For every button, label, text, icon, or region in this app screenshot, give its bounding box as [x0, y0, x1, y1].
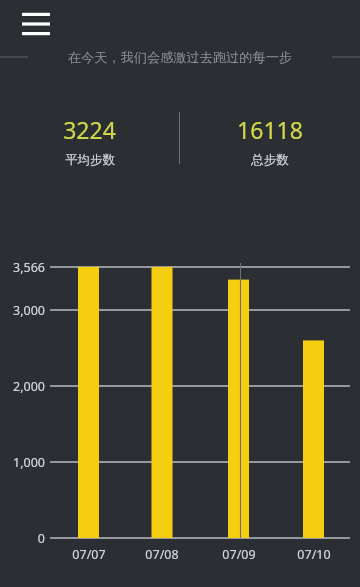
staticText: 07/07 — [72, 546, 106, 563]
staticText: 总步数 — [251, 152, 289, 168]
button[interactable]: Open navigation menu — [10, 4, 62, 44]
staticText: 07/10 — [297, 546, 331, 563]
button[interactable]: 3224 — [0, 112, 179, 168]
staticText: 3,000 — [13, 302, 45, 318]
staticText: 07/09 — [222, 546, 256, 563]
button[interactable]: 07/09 — [213, 544, 265, 564]
staticText: 在今天，我们会感激过去跑过的每一步 — [30, 49, 330, 66]
button[interactable]: 07/10 — [288, 544, 340, 564]
button[interactable]: 16118 — [180, 112, 360, 168]
button[interactable]: 07/08 — [136, 544, 188, 564]
staticText: 0 — [37, 530, 45, 546]
staticText: 16118 — [237, 114, 303, 145]
staticText: 3224 — [63, 114, 116, 145]
button[interactable]: 07/07 — [63, 544, 115, 564]
staticText: 3,566 — [13, 259, 45, 275]
staticText: 1,000 — [13, 454, 45, 470]
staticText: 07/08 — [145, 546, 179, 563]
staticText: 平均步数 — [65, 152, 115, 168]
staticText: 2,000 — [13, 378, 45, 394]
